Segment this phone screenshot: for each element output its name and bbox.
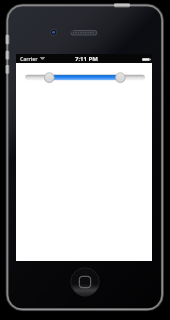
staticText: Carrier xyxy=(20,56,38,63)
staticText: 7:11 PM xyxy=(75,55,98,63)
button[interactable]: Range slider xyxy=(25,71,145,84)
